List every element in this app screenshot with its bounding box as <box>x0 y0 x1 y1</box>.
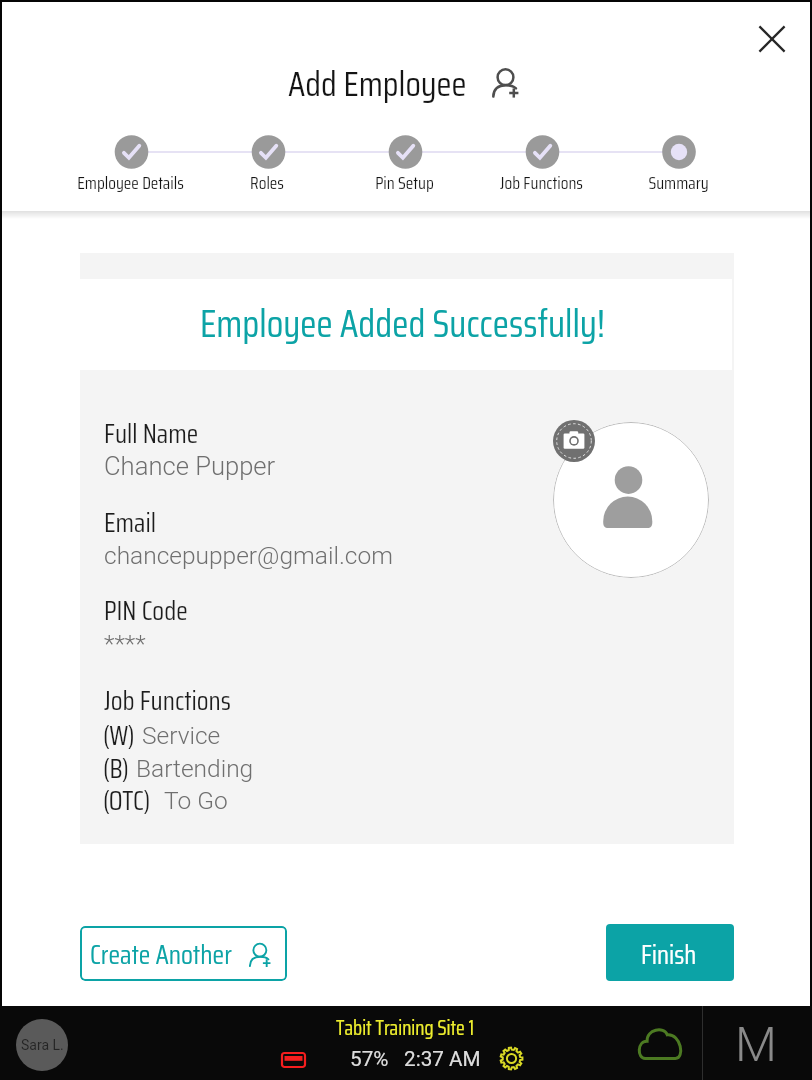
button[interactable]: Sara L. <box>16 1019 68 1071</box>
other: Add employee <box>485 60 530 105</box>
staticText: Employee Added Successfully! <box>200 294 605 353</box>
button[interactable]: Change photo <box>553 420 595 462</box>
staticText: To Go <box>164 786 228 815</box>
button[interactable]: Employee photo <box>553 422 709 578</box>
staticText: (W) <box>103 715 135 757</box>
staticText: Add Employee <box>288 56 467 111</box>
staticText: **** <box>104 629 146 658</box>
staticText: Bartending <box>136 754 254 783</box>
staticText: Employee Details <box>77 169 184 197</box>
button[interactable]: Close <box>748 15 796 63</box>
staticText: Service <box>142 721 221 750</box>
staticText: Job Functions <box>104 680 231 722</box>
staticText: (B) <box>103 748 129 790</box>
button[interactable]: Cloud status <box>630 1020 692 1066</box>
staticText: PIN Code <box>104 590 188 632</box>
staticText: Create Another <box>90 933 232 976</box>
staticText: chancepupper@gmail.com <box>104 541 393 570</box>
staticText: M <box>735 1016 777 1073</box>
staticText: (OTC) <box>103 780 151 822</box>
staticText: Finish <box>641 934 697 976</box>
staticText: Sara L. <box>21 1037 64 1053</box>
staticText: Tabit Training Site 1 <box>336 1012 475 1044</box>
button[interactable]: Create Another <box>80 926 287 981</box>
staticText: Summary <box>648 169 709 197</box>
button[interactable]: M <box>702 1006 810 1080</box>
staticText: Pin Setup <box>375 169 434 197</box>
staticText: 2:37 AM <box>404 1047 481 1071</box>
button[interactable]: Finish <box>606 924 734 981</box>
button[interactable]: Settings <box>500 1047 523 1070</box>
staticText: Chance Pupper <box>104 451 276 481</box>
staticText: Roles <box>250 169 284 197</box>
staticText: 57% <box>350 1047 389 1071</box>
staticText: Job Functions <box>500 169 583 197</box>
staticText: Email <box>104 502 156 544</box>
staticText: Full Name <box>104 413 199 455</box>
